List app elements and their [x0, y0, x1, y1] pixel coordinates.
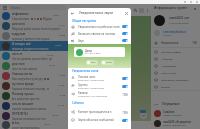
staticText: в другом облаке: [12, 32, 35, 36]
button[interactable]: Window control: [188, 0, 194, 4]
staticText: Почему лучше поднять: [12, 92, 35, 96]
button[interactable]: Menu: [2, 5, 7, 10]
button[interactable]: что-то мешает: [0, 101, 68, 111]
staticText: Эта не должна просто быть тут: [12, 57, 53, 61]
staticText: и вот так получилось: [12, 126, 40, 129]
staticText: Общие настройки: [72, 19, 97, 23]
button[interactable]: 1 одноборка: [154, 62, 197, 69]
staticText: Уведомления на рабочем столе: [78, 25, 122, 29]
button[interactable]: чего эт: [0, 51, 68, 61]
button[interactable]: музыка: [154, 83, 197, 90]
staticText: Привет, как дела: [163, 114, 182, 117]
button[interactable]: Toggle: [122, 93, 128, 96]
staticText: ну этого вроде: [12, 82, 34, 86]
staticText: 13:09: [59, 73, 66, 76]
staticText: Включено, Стандартный: [78, 79, 105, 82]
staticText: 16:30: [55, 43, 62, 46]
button[interactable]: Toggle: [122, 111, 128, 114]
staticText: Уведомления: [161, 41, 179, 45]
button[interactable]: Toggle: [122, 32, 128, 35]
staticText: 16:55: [59, 33, 66, 36]
staticText: Отключено, нет изменений: [78, 95, 108, 98]
button[interactable]: Каналы: [68, 90, 131, 98]
button[interactable]: Scroll to bottom: [140, 112, 147, 119]
button[interactable]: Уведомления: [154, 38, 197, 47]
button[interactable]: Search: [133, 8, 138, 13]
staticText: смыШОЕ чат: [169, 16, 190, 20]
button[interactable]: в другом облаке: [0, 31, 68, 41]
button[interactable]: Back: [70, 11, 75, 16]
button[interactable]: Знаешь ли ты почему: [0, 71, 68, 81]
staticText: музыка: [161, 85, 170, 88]
staticText: Хорошо отписать почему: [12, 87, 46, 91]
button[interactable]: Включать звонки на полном экране: [68, 30, 131, 37]
button[interactable]: Window control: [194, 0, 200, 4]
button[interactable]: More: [145, 8, 149, 12]
button[interactable]: ПЕРЕЛЕТЫ: [0, 111, 68, 121]
staticText: Поиск: [11, 6, 20, 10]
staticText: Ответы, сделали это: [163, 124, 186, 127]
button[interactable]: Контакт присоединился к Telegram: [68, 108, 131, 116]
button[interactable]: 268 фотографий: [154, 48, 197, 55]
staticText: Мирный робот иначе этого не умеет: [12, 27, 60, 31]
button[interactable]: Поиск: [9, 5, 66, 10]
staticText: Включать звонки на полном экране: [78, 32, 122, 36]
staticText: А теперь всё: [12, 42, 31, 46]
staticText: В 7 чату у бота: [85, 52, 101, 55]
staticText: Заранее понимаю всё это: [12, 117, 46, 121]
button[interactable]: инфоканал: [0, 11, 68, 21]
button[interactable]: Toggle: [122, 85, 128, 88]
button[interactable]: Звук: [86, 60, 98, 65]
button[interactable]: Личные чаты: [68, 74, 131, 82]
button[interactable]: Toggle: [122, 39, 128, 42]
button[interactable]: 1280 ссылок: [154, 69, 197, 76]
staticText: инфоканал: [12, 12, 29, 16]
button[interactable]: Уведомления на рабочем столе: [68, 23, 131, 30]
button[interactable]: Window control: [182, 0, 188, 4]
button[interactable]: голосовые сообщения: [154, 76, 197, 83]
staticText: Мурик. Согласитесь подру: [43, 17, 66, 21]
staticText: 1 282 участника: [169, 21, 189, 24]
button[interactable]: Toggle: [122, 119, 128, 122]
button[interactable]: 7 Файлов: [154, 55, 197, 62]
button[interactable]: Toggle: [122, 77, 128, 80]
button[interactable]: Close: [124, 11, 129, 16]
button[interactable]: А это: [0, 121, 68, 129]
staticText: Группы: [78, 83, 88, 87]
button[interactable]: Группы: [68, 82, 131, 90]
staticText: ничего страшного совсем: [12, 107, 46, 111]
staticText: 09:55: [52, 113, 59, 116]
staticText: 15:42: [47, 53, 54, 56]
button[interactable]: Close: [192, 6, 197, 11]
button[interactable]: ну этого вроде: [0, 81, 68, 91]
button[interactable]: для чего нужны эти боты: [0, 21, 68, 31]
staticText: Звук: [78, 39, 122, 43]
button[interactable]: Звуки обычных сообщений: [68, 116, 131, 124]
staticText: А это: [12, 121, 20, 125]
staticText: Информация о группе: [154, 6, 188, 10]
button[interactable]: Звук: [68, 37, 131, 44]
staticText: для того: [12, 62, 25, 66]
button[interactable]: Ответ: [101, 60, 114, 65]
button[interactable]: смыШОЕ обсуждение: [154, 118, 197, 128]
button[interactable]: для того: [0, 61, 68, 71]
button[interactable]: Почему лучше поднять: [0, 91, 68, 101]
button[interactable]: Смайлик: [154, 108, 197, 118]
staticText: Каналы: [78, 91, 88, 95]
button[interactable]: t.me/smyshoechat: [154, 28, 197, 38]
staticText: 1 одноборка: [161, 64, 177, 67]
staticText: что-то мешает: [12, 102, 34, 106]
staticText: 18:07: [53, 13, 60, 16]
staticText: 09:01: [44, 122, 51, 125]
button[interactable]: А теперь всё: [0, 41, 68, 51]
staticText: чего эт: [12, 52, 23, 56]
button[interactable]: Toggle: [122, 25, 128, 28]
staticText: 17:21: [59, 23, 66, 26]
staticText: хорошо у меня не так лучше: [12, 37, 50, 41]
